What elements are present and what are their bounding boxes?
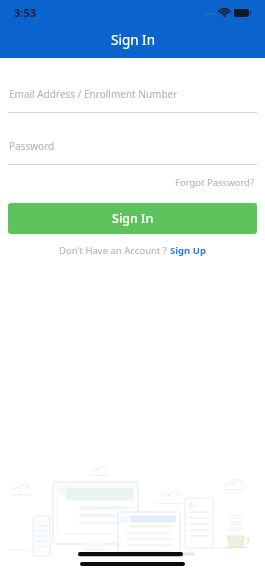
staticText: Sign In (112, 210, 154, 227)
staticText: Sign Up (170, 244, 206, 257)
staticText: Email Address / Enrollment Number (9, 87, 178, 101)
button[interactable]: Forgot Password? (173, 174, 257, 191)
staticText: Don't Have an Account ? (59, 244, 170, 257)
button[interactable]: Sign In (8, 203, 257, 234)
staticText: Sign In (111, 31, 155, 49)
button[interactable]: Sign Up (170, 244, 206, 257)
button[interactable]: Password (0, 139, 265, 165)
staticText: Password (9, 139, 55, 153)
button[interactable]: Email Address / Enrollment Number (0, 87, 265, 113)
staticText: Forgot Password? (175, 176, 255, 189)
staticText: 3:53 (14, 5, 36, 20)
